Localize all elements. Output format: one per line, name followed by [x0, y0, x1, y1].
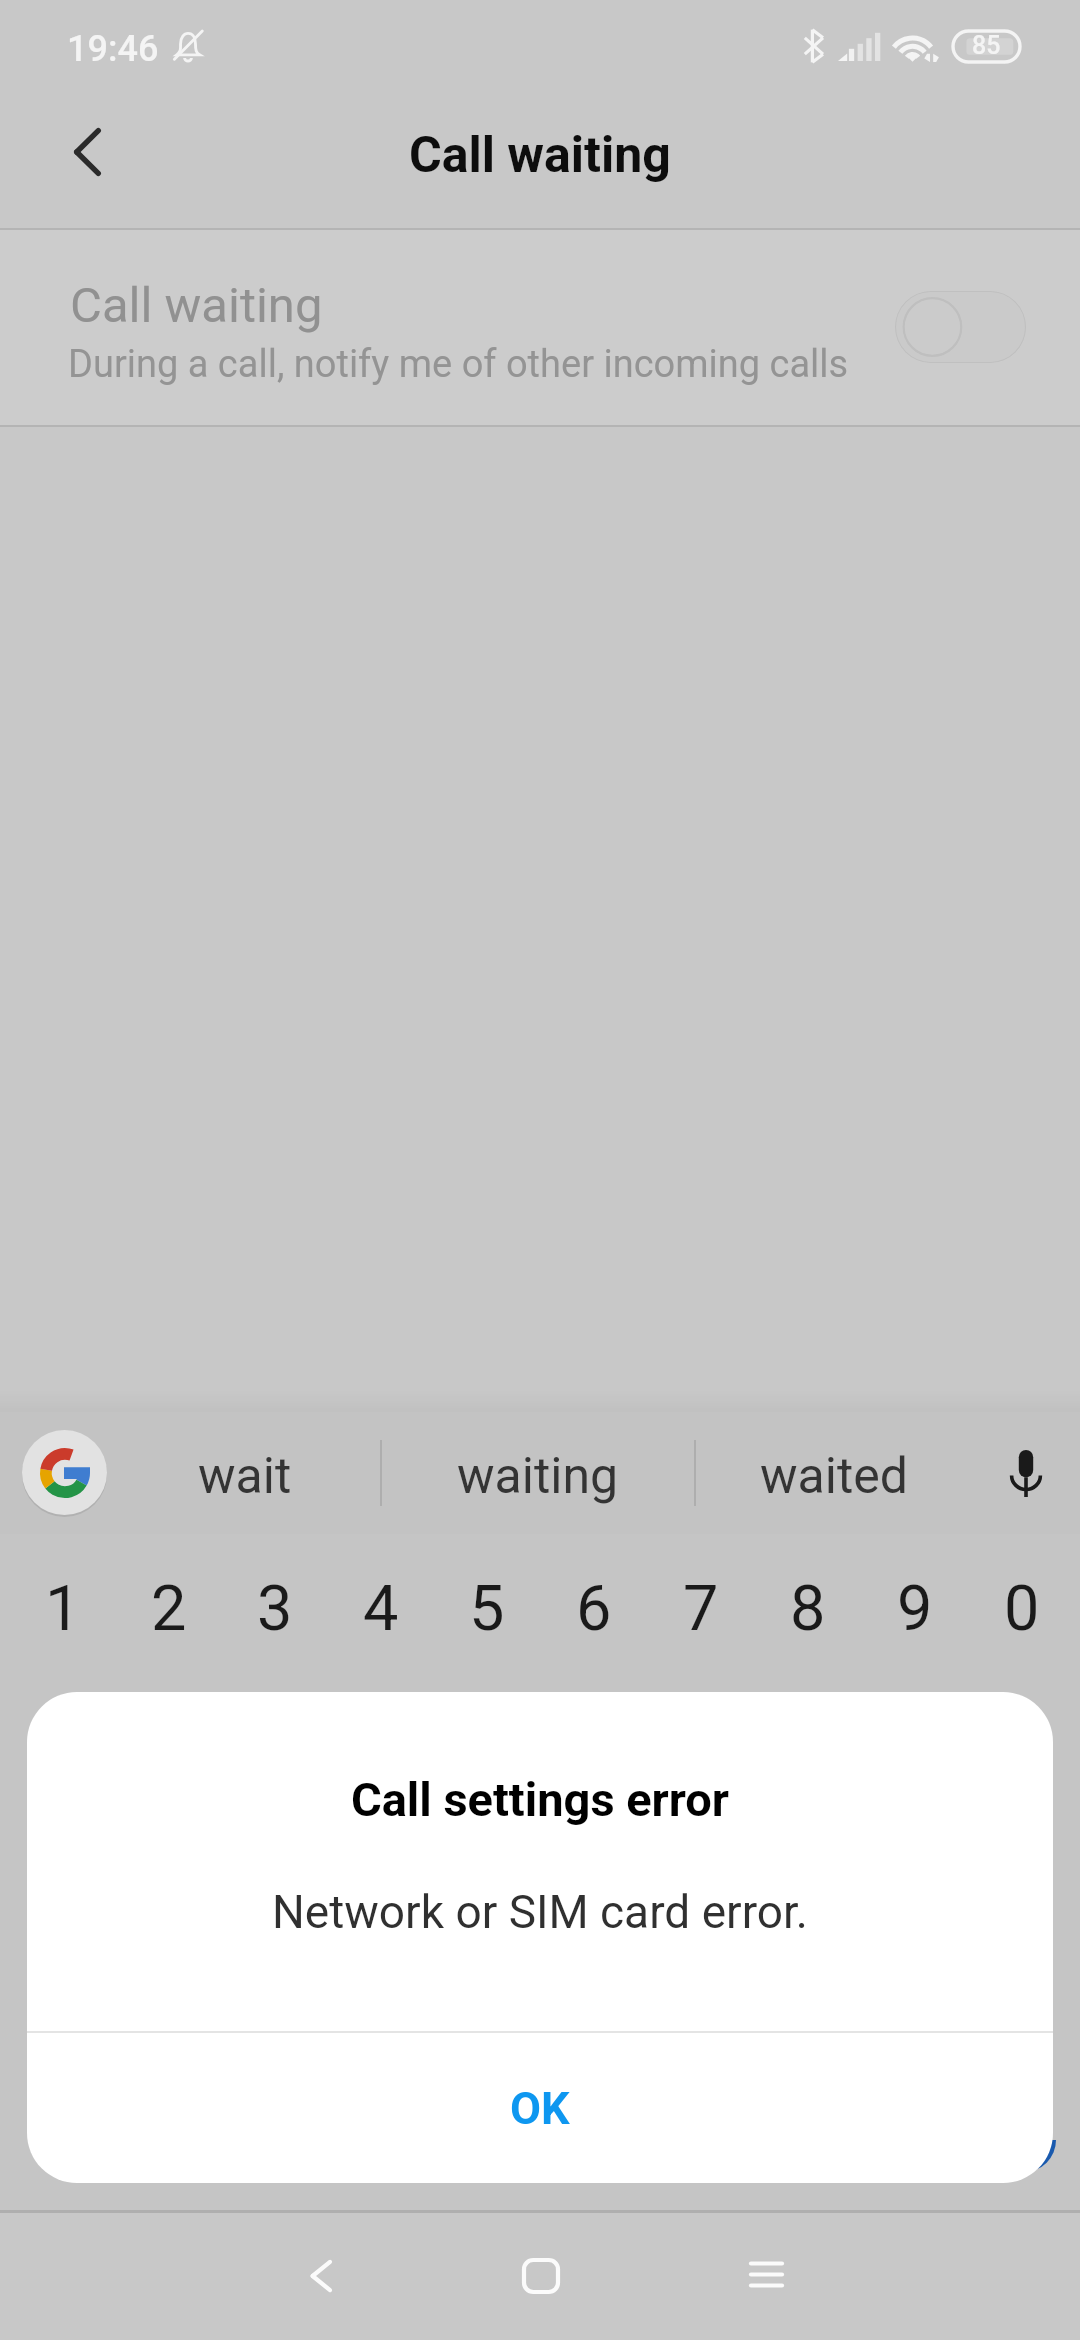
- staticText: wait: [198, 1447, 292, 1506]
- staticText: Call waiting: [409, 126, 671, 185]
- staticText: Call settings error: [27, 1772, 1053, 1827]
- staticText: During a call, notify me of other incomi…: [68, 342, 849, 387]
- button[interactable]: 8: [754, 1534, 861, 1684]
- staticText: 0: [1004, 1572, 1040, 1646]
- button[interactable]: Call waiting: [0, 230, 1080, 425]
- button[interactable]: Home: [486, 2213, 596, 2338]
- staticText: OK: [510, 2082, 570, 2135]
- button[interactable]: OK: [27, 2033, 1053, 2183]
- button[interactable]: Back: [38, 104, 136, 200]
- button[interactable]: waiting: [382, 1415, 694, 1537]
- button[interactable]: 6: [540, 1534, 647, 1684]
- staticText: 85: [972, 31, 1001, 60]
- button[interactable]: 9: [861, 1534, 968, 1684]
- staticText: 3: [257, 1572, 293, 1646]
- staticText: Network or SIM card error.: [27, 1885, 1053, 1939]
- staticText: 4: [363, 1572, 399, 1646]
- button[interactable]: 3: [222, 1534, 328, 1684]
- button[interactable]: Voice input: [972, 1412, 1080, 1534]
- button[interactable]: Back: [266, 2213, 376, 2338]
- staticText: 7: [683, 1572, 719, 1646]
- button[interactable]: 1: [10, 1534, 116, 1684]
- button[interactable]: 5: [434, 1534, 540, 1684]
- staticText: Call waiting: [70, 277, 323, 334]
- button[interactable]: 4: [328, 1534, 434, 1684]
- button[interactable]: 0: [968, 1534, 1075, 1684]
- button[interactable]: 7: [647, 1534, 754, 1684]
- staticText: 8: [790, 1572, 826, 1646]
- staticText: 1: [45, 1572, 81, 1646]
- staticText: 2: [151, 1572, 187, 1646]
- button[interactable]: wait: [110, 1415, 380, 1537]
- staticText: 9: [897, 1572, 933, 1646]
- staticText: 19:46: [67, 28, 159, 70]
- staticText: waiting: [457, 1447, 619, 1506]
- button[interactable]: 2: [116, 1534, 222, 1684]
- staticText: 5: [469, 1572, 505, 1646]
- button[interactable]: Google search: [22, 1430, 107, 1515]
- button[interactable]: Recent apps: [711, 2213, 821, 2336]
- staticText: 6: [576, 1572, 612, 1646]
- button[interactable]: waited: [696, 1415, 972, 1537]
- staticText: waited: [760, 1447, 908, 1506]
